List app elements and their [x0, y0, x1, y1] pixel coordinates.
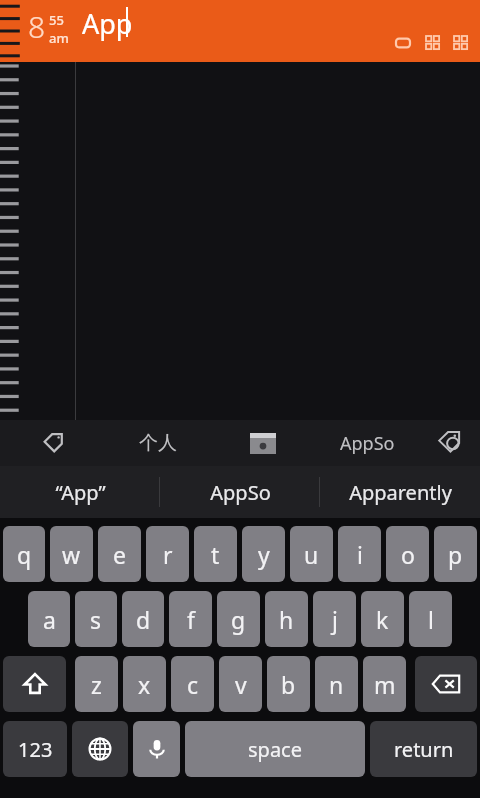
button[interactable]: AppSo: [160, 466, 320, 518]
button[interactable]: Image: [210, 420, 315, 466]
staticText: “App”: [55, 479, 106, 506]
button[interactable]: g: [217, 591, 260, 647]
button[interactable]: x: [123, 656, 166, 712]
button[interactable]: o: [386, 526, 429, 582]
button[interactable]: Undo: [392, 32, 414, 54]
button[interactable]: e: [98, 526, 141, 582]
button[interactable]: w: [50, 526, 93, 582]
staticText: x: [138, 669, 151, 700]
staticText: n: [329, 669, 344, 700]
button[interactable]: t: [194, 526, 237, 582]
staticText: space: [248, 736, 302, 763]
button[interactable]: z: [75, 656, 118, 712]
button[interactable]: Switch language: [72, 721, 128, 777]
staticText: 55: [49, 11, 64, 29]
button[interactable]: space: [185, 721, 365, 777]
button[interactable]: Tag: [0, 420, 105, 466]
button[interactable]: v: [219, 656, 262, 712]
button[interactable]: s: [75, 591, 117, 647]
staticText: App: [82, 5, 133, 42]
button[interactable]: r: [146, 526, 189, 582]
staticText: r: [163, 539, 173, 570]
button[interactable]: m: [363, 656, 406, 712]
staticText: e: [113, 539, 126, 570]
staticText: o: [401, 539, 415, 570]
staticText: return: [394, 736, 454, 763]
button[interactable]: a: [28, 591, 70, 647]
staticText: u: [304, 539, 319, 570]
staticText: b: [281, 669, 296, 700]
button[interactable]: d: [122, 591, 164, 647]
button[interactable]: p: [434, 526, 477, 582]
button[interactable]: k: [361, 591, 404, 647]
button[interactable]: q: [3, 526, 45, 582]
button[interactable]: c: [171, 656, 214, 712]
staticText: w: [62, 539, 81, 570]
button[interactable]: Tags: [420, 420, 480, 466]
button[interactable]: u: [290, 526, 333, 582]
staticText: j: [332, 604, 338, 635]
staticText: g: [231, 604, 246, 635]
button[interactable]: More: [450, 32, 472, 54]
button[interactable]: i: [338, 526, 381, 582]
staticText: p: [448, 539, 463, 570]
staticText: f: [187, 604, 195, 635]
staticText: c: [187, 669, 199, 700]
staticText: m: [374, 669, 396, 700]
staticText: Apparently: [349, 479, 452, 506]
staticText: 8: [28, 6, 46, 47]
button[interactable]: Voice input: [133, 721, 180, 777]
button[interactable]: y: [242, 526, 285, 582]
staticText: 123: [18, 736, 53, 763]
staticText: i: [357, 539, 363, 570]
staticText: h: [279, 604, 294, 635]
button[interactable]: n: [315, 656, 358, 712]
button[interactable]: j: [313, 591, 356, 647]
button[interactable]: h: [265, 591, 308, 647]
button[interactable]: return: [370, 721, 477, 777]
staticText: 个人: [139, 431, 177, 455]
button[interactable]: f: [169, 591, 212, 647]
staticText: k: [376, 604, 389, 635]
button[interactable]: 123: [3, 721, 67, 777]
button[interactable]: Backspace: [415, 656, 477, 712]
staticText: d: [136, 604, 151, 635]
staticText: q: [17, 539, 32, 570]
button[interactable]: AppSo: [315, 420, 420, 466]
button[interactable]: “App”: [0, 466, 160, 518]
staticText: z: [91, 669, 102, 700]
staticText: AppSo: [340, 431, 395, 456]
staticText: s: [90, 604, 102, 635]
button[interactable]: l: [409, 591, 452, 647]
button[interactable]: 个人: [105, 420, 210, 466]
staticText: t: [211, 539, 220, 570]
staticText: a: [43, 604, 56, 635]
staticText: am: [49, 29, 69, 47]
button[interactable]: b: [267, 656, 310, 712]
staticText: AppSo: [210, 479, 271, 506]
staticText: y: [258, 539, 270, 570]
button[interactable]: Grid: [422, 32, 444, 54]
staticText: l: [428, 604, 434, 635]
button[interactable]: Shift: [3, 656, 66, 712]
staticText: v: [235, 669, 247, 700]
button[interactable]: Apparently: [320, 466, 480, 518]
